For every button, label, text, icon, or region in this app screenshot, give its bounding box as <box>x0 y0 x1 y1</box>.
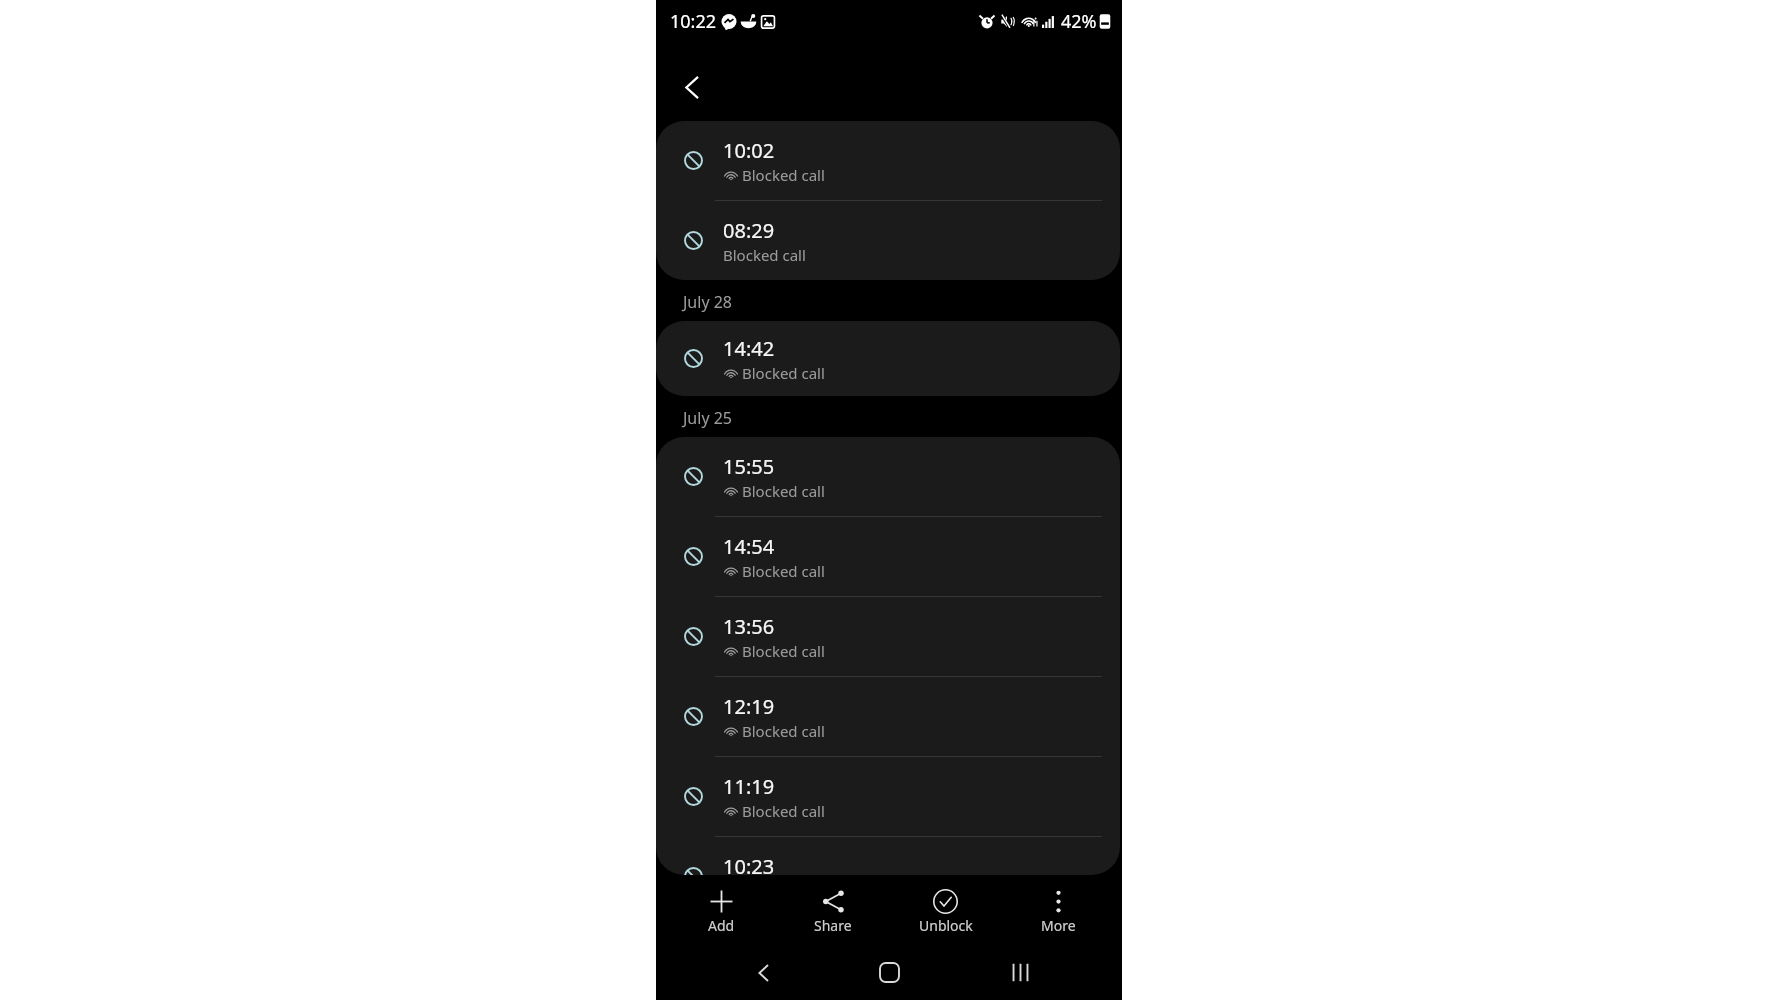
staticText: 12:19 <box>723 693 775 720</box>
button[interactable]: Recent apps <box>955 945 1085 1000</box>
staticText: 14:54 <box>723 533 775 560</box>
staticText: Blocked call <box>742 561 825 581</box>
button[interactable]: 10:02 <box>656 121 1120 200</box>
button[interactable]: 14:54 <box>656 517 1120 596</box>
staticText: Blocked call <box>723 245 806 265</box>
staticText: Blocked call <box>742 363 825 383</box>
staticText: 11:19 <box>723 773 775 800</box>
staticText: Blocked call <box>742 165 825 185</box>
staticText: 15:55 <box>723 453 775 480</box>
button[interactable]: 12:19 <box>656 677 1120 756</box>
staticText: July 25 <box>683 407 733 429</box>
staticText: 13:56 <box>723 613 775 640</box>
button[interactable]: 10:23 <box>656 837 1120 875</box>
staticText: Share <box>814 916 852 935</box>
button[interactable]: More <box>1002 877 1115 945</box>
button[interactable]: Back <box>694 945 824 1000</box>
staticText: Blocked call <box>742 641 825 661</box>
staticText: 10:23 <box>723 853 775 875</box>
button[interactable]: 11:19 <box>656 757 1120 836</box>
staticText: 08:29 <box>723 217 775 244</box>
staticText: Add <box>708 916 735 935</box>
button[interactable]: Share <box>777 877 889 945</box>
staticText: 42% <box>1061 9 1097 34</box>
staticText: Blocked call <box>742 721 825 741</box>
staticText: 10:02 <box>723 137 775 164</box>
staticText: Blocked call <box>742 481 825 501</box>
staticText: Blocked call <box>742 801 825 821</box>
staticText: More <box>1041 916 1076 935</box>
staticText: July 28 <box>683 291 733 313</box>
button[interactable]: 08:29 <box>656 201 1120 280</box>
staticText: 14:42 <box>723 335 775 362</box>
button[interactable]: 15:55 <box>656 437 1120 516</box>
button[interactable]: Home <box>824 945 955 1000</box>
staticText: Unblock <box>919 916 973 935</box>
button[interactable]: 14:42 <box>656 321 1120 396</box>
button[interactable]: Unblock <box>889 877 1002 945</box>
button[interactable]: Add <box>665 877 777 945</box>
button[interactable]: 13:56 <box>656 597 1120 676</box>
button[interactable]: Navigate up <box>666 61 718 113</box>
staticText: 10:22 <box>670 9 717 34</box>
